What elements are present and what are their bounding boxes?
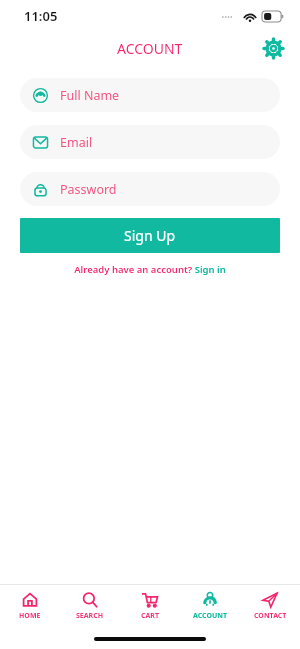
button[interactable]: Password <box>20 172 280 206</box>
button[interactable]: Already have an account? Sign in <box>0 263 300 276</box>
button[interactable]: Email <box>20 125 280 159</box>
staticText: Email <box>60 134 93 151</box>
staticText: 11:05 <box>24 7 58 25</box>
button[interactable]: HOME <box>0 585 60 628</box>
staticText: SEARCH <box>76 611 104 621</box>
button[interactable]: Settings <box>256 32 290 64</box>
staticText: CART <box>141 611 159 621</box>
button[interactable]: Full Name <box>20 78 280 112</box>
button[interactable]: ACCOUNT <box>180 585 240 628</box>
button[interactable]: SEARCH <box>60 585 120 628</box>
button[interactable]: CONTACT <box>240 585 300 628</box>
button[interactable]: CART <box>120 585 180 628</box>
staticText: Password <box>60 181 117 198</box>
button[interactable]: Sign Up <box>20 218 280 253</box>
staticText: ACCOUNT <box>117 39 183 58</box>
staticText: HOME <box>19 611 41 621</box>
staticText: CONTACT <box>254 611 287 621</box>
staticText: ACCOUNT <box>193 611 227 621</box>
staticText: Already have an account? Sign in <box>74 263 226 276</box>
staticText: Sign Up <box>124 226 176 245</box>
staticText: Full Name <box>60 87 120 104</box>
